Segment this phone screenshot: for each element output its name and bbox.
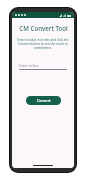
staticText: CM Convert Tool xyxy=(19,24,68,32)
staticText: Enter inches xyxy=(19,63,39,68)
staticText: Enter a value in inches and click the Co… xyxy=(15,38,71,50)
button[interactable]: Enter inches xyxy=(19,63,67,70)
button[interactable]: Convert xyxy=(26,96,61,105)
staticText: Convert xyxy=(37,98,51,103)
other: Home gesture bar xyxy=(33,165,53,166)
